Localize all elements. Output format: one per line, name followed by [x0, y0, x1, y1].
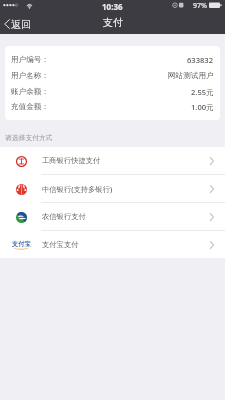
staticText: 支付宝	[12, 240, 31, 248]
staticText: 中信银行(支持多银行)	[42, 184, 113, 194]
staticText: 充值金额：	[11, 102, 49, 112]
button[interactable]: 中信银行(支持多银行)	[0, 175, 225, 202]
button[interactable]: 农信银行支付	[0, 203, 225, 230]
staticText: 用户编号：	[11, 55, 49, 65]
staticText: 用户名称：	[11, 71, 49, 81]
staticText: 返回	[11, 18, 31, 31]
staticText: 工商银行快捷支付	[42, 156, 101, 165]
staticText: 网站测试用户	[168, 71, 214, 81]
staticText: 633832	[187, 55, 214, 65]
staticText: 农信银行支付	[42, 212, 86, 221]
button[interactable]: 支付宝	[0, 231, 225, 258]
button[interactable]: 工商银行快捷支付	[0, 147, 225, 174]
staticText: 请选择支付方式	[5, 133, 53, 142]
staticText: 1.00元	[191, 102, 214, 112]
staticText: 97%	[193, 1, 207, 11]
staticText: 10:36	[102, 1, 123, 12]
button[interactable]: 返回	[0, 14, 37, 34]
staticText: 2.55元	[191, 87, 214, 97]
staticText: 支付宝支付	[42, 240, 79, 249]
staticText: 账户余额：	[11, 87, 49, 97]
staticText: 支付	[103, 16, 123, 29]
